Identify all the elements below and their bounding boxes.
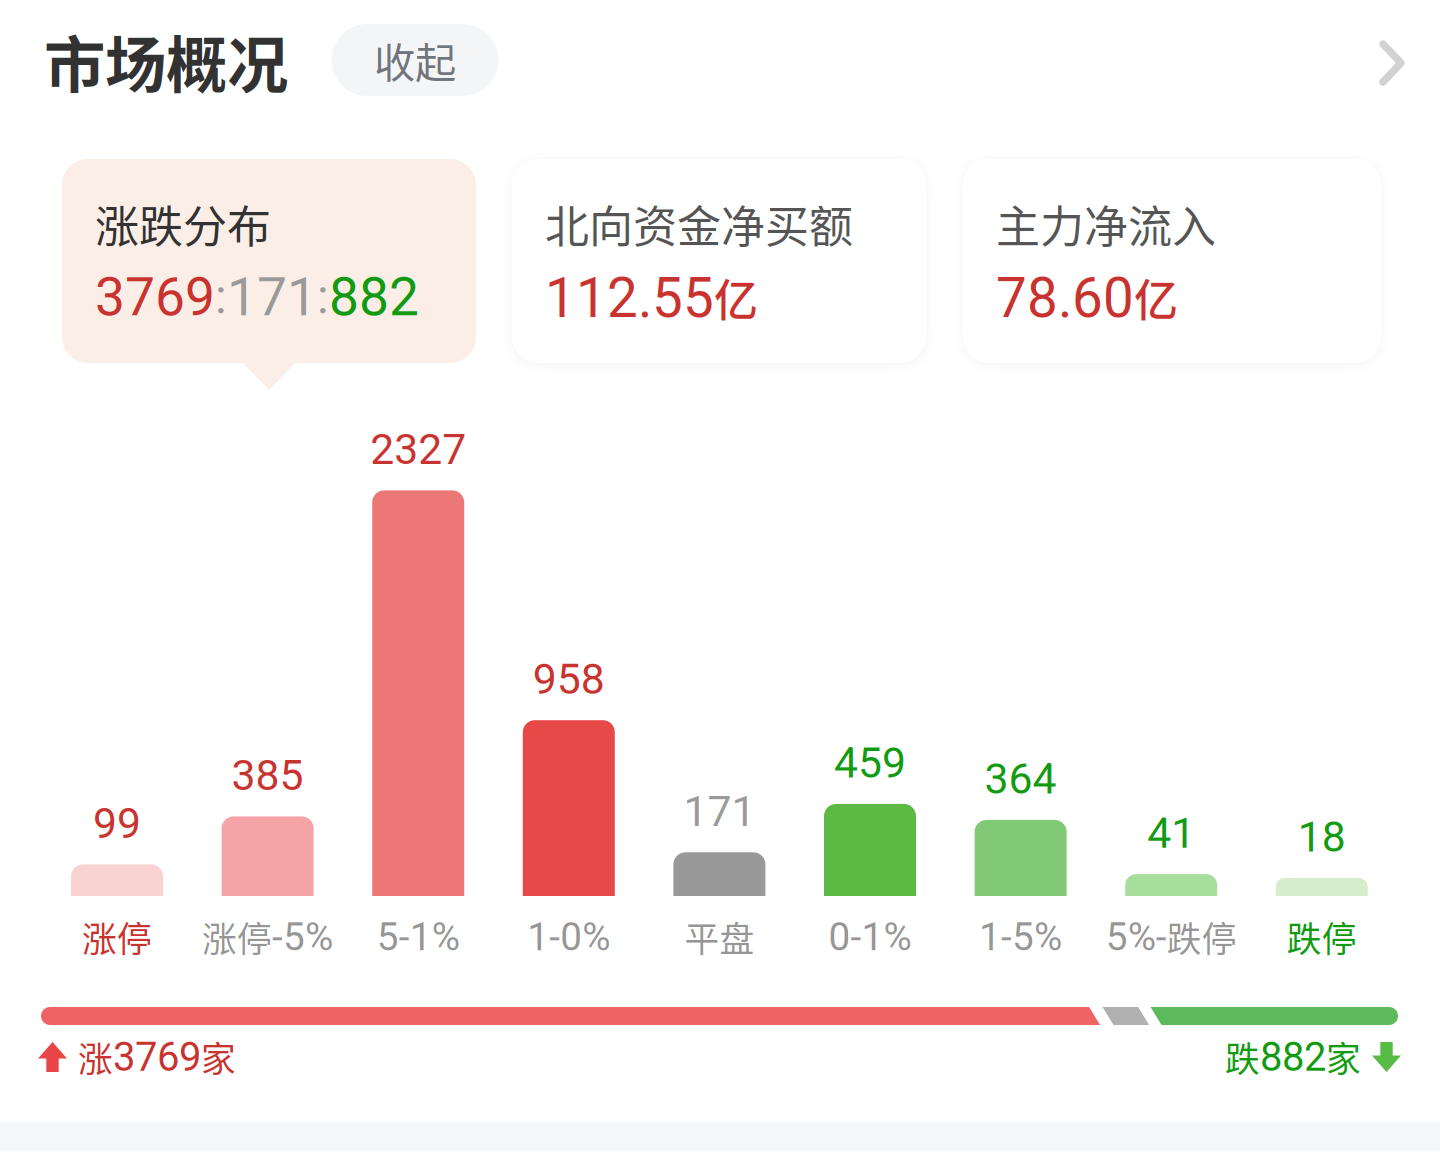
staticText: 北向资金净买额 [545,192,853,256]
staticText: 跌停 [1167,912,1237,962]
staticText: 家 [1326,1032,1361,1082]
staticText: 5-1% [377,914,460,960]
staticText: 2327 [370,424,466,474]
staticText: 18 [1298,812,1346,862]
staticText: 882 [1260,1034,1326,1080]
staticText: 市场概况 [44,17,288,105]
staticText: 1-0% [527,914,610,960]
staticText: 3769 [113,1034,201,1080]
staticText: 涨 [78,1032,113,1082]
staticText: 41 [1147,808,1195,858]
staticText: 3769 [95,266,215,328]
staticText: 171 [683,786,755,836]
staticText: 364 [985,754,1057,804]
staticText: 112.55 [545,266,714,330]
staticText: : [215,269,227,325]
staticText: 亿 [1134,266,1178,329]
staticText: 958 [533,654,605,704]
button[interactable]: 展开市场概况 [1361,26,1423,100]
staticText: 涨停 [202,912,272,962]
staticText: 收起 [374,30,456,90]
staticText: 跌 [1225,1032,1260,1082]
button[interactable]: 市场概况 [40,20,292,102]
staticText: 385 [232,750,304,800]
staticText: -5% [272,914,333,960]
staticText: 1-5% [979,914,1062,960]
staticText: 主力净流入 [996,192,1216,256]
staticText: 171 [227,266,317,328]
staticText: 459 [834,738,906,788]
staticText: 平盘 [684,912,754,962]
staticText: 99 [93,798,141,848]
staticText: 家 [201,1032,236,1082]
staticText: 跌停 [1287,912,1357,962]
staticText: 涨跌分布 [95,192,271,256]
staticText: 亿 [714,266,758,329]
staticText: 78.60 [996,266,1134,330]
staticText: : [317,269,329,325]
staticText: 涨停 [82,912,152,962]
staticText: 0-1% [828,914,911,960]
button[interactable]: 收起 [331,24,498,96]
staticText: 882 [329,266,419,328]
staticText: 5%- [1106,914,1167,960]
